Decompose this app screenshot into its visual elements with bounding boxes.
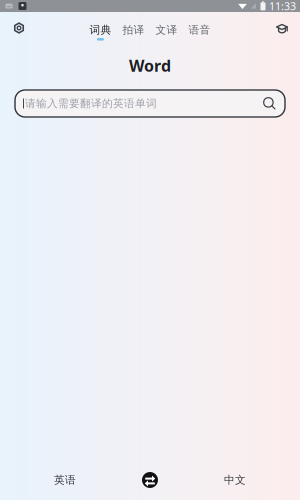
staticText: 英语: [54, 473, 76, 486]
staticText: 词典: [89, 23, 111, 36]
staticText: 11:33: [269, 0, 296, 13]
button[interactable]: Settings: [2, 12, 32, 42]
staticText: 请输入需要翻译的英语单词: [25, 97, 157, 110]
button[interactable]: 英语: [0, 466, 130, 494]
button[interactable]: Study: [270, 12, 298, 42]
button[interactable]: 文译: [153, 12, 179, 42]
button[interactable]: 请输入需要翻译的英语单词: [15, 90, 285, 117]
staticText: 文译: [155, 23, 177, 36]
button[interactable]: 语音: [186, 12, 212, 42]
staticText: 拍译: [122, 23, 144, 36]
staticText: 中文: [224, 473, 246, 486]
staticText: 语音: [188, 23, 210, 36]
button[interactable]: 拍译: [120, 12, 146, 42]
button[interactable]: 词典: [87, 12, 113, 42]
staticText: Word: [129, 55, 171, 76]
button[interactable]: 中文: [170, 466, 300, 494]
button[interactable]: Swap languages: [130, 466, 170, 494]
